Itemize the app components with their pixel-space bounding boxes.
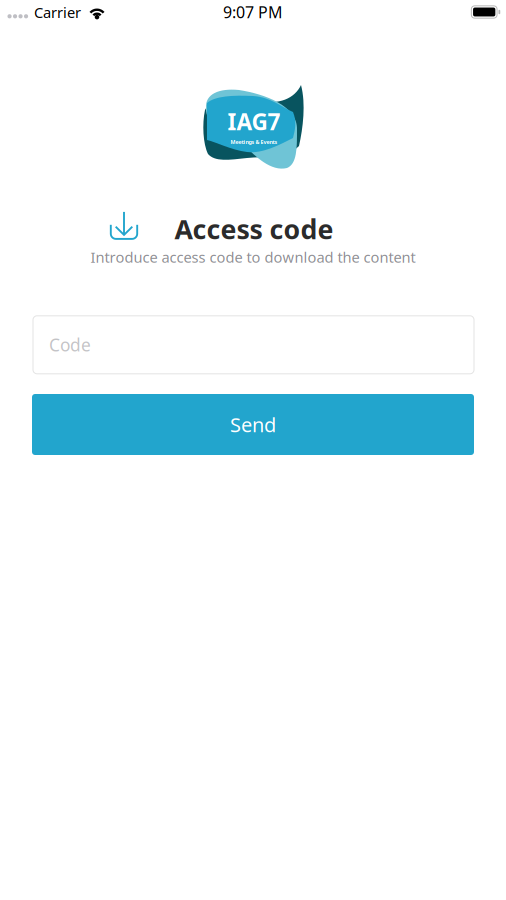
staticText: Access code [174, 211, 333, 247]
staticText: IAG7 [227, 106, 280, 136]
staticText: Code [49, 333, 91, 356]
staticText: 9:07 PM [223, 1, 283, 23]
button[interactable]: Code [33, 316, 474, 374]
staticText: Introduce access code to download the co… [90, 247, 415, 267]
staticText: Meetings & Events [230, 138, 277, 146]
button[interactable]: Send [32, 394, 474, 455]
staticText: Send [230, 411, 276, 438]
staticText: Carrier [34, 2, 81, 22]
